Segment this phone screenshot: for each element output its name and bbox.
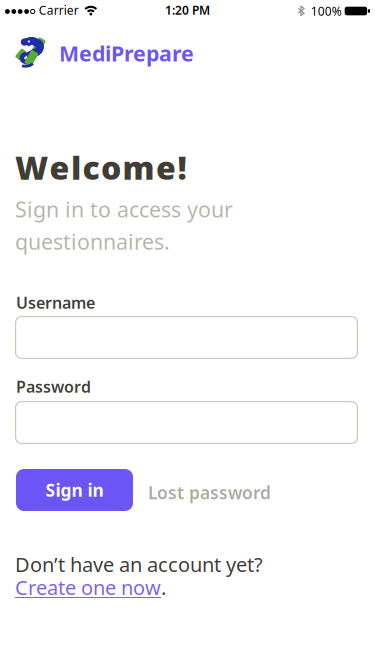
staticText: 1:20 PM xyxy=(165,2,210,18)
button[interactable]: Lost password xyxy=(148,481,271,504)
staticText: Carrier xyxy=(39,2,79,18)
staticText: Sign in xyxy=(45,478,103,501)
button[interactable]: Create one now xyxy=(15,574,161,601)
staticText: . xyxy=(161,574,166,601)
staticText: Username xyxy=(16,292,95,313)
staticText: Password xyxy=(16,376,91,397)
button[interactable]: Sign in xyxy=(16,469,133,511)
staticText: Don’t have an account yet? xyxy=(15,551,263,578)
staticText: Sign in to access your questionnaires. xyxy=(15,195,233,256)
staticText: 100% xyxy=(311,3,342,19)
staticText: MediPrepare xyxy=(59,39,194,67)
staticText: Create one now xyxy=(15,574,161,601)
textField[interactable]: Password xyxy=(27,411,358,434)
staticText: Welcome! xyxy=(15,146,186,188)
staticText: Lost password xyxy=(148,481,271,504)
textField[interactable]: Username xyxy=(27,326,358,349)
